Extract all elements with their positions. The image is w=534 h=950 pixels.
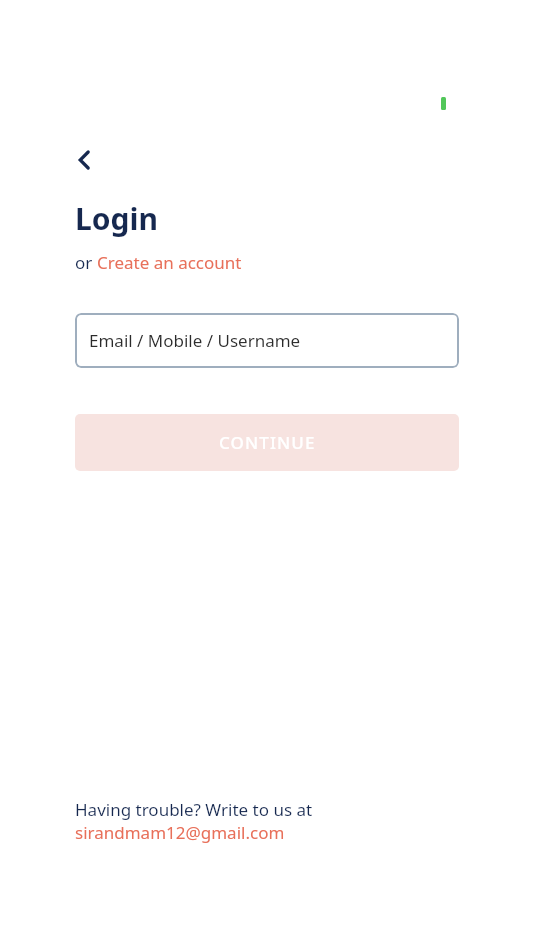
staticText: Create an account — [97, 251, 242, 274]
button[interactable]: CONTINUE — [75, 414, 459, 471]
staticText: Having trouble? Write to us at — [75, 798, 313, 821]
button[interactable]: sirandmam12@gmail.com — [75, 821, 285, 844]
staticText: or — [75, 251, 97, 274]
staticText: sirandmam12@gmail.com — [75, 821, 285, 844]
button[interactable]: Email / Mobile / Username — [75, 313, 459, 368]
button[interactable]: Create an account — [97, 251, 242, 274]
staticText: Email / Mobile / Username — [89, 329, 301, 352]
staticText: CONTINUE — [219, 431, 316, 454]
button[interactable]: Back — [75, 143, 109, 177]
staticText: Login — [75, 198, 158, 239]
